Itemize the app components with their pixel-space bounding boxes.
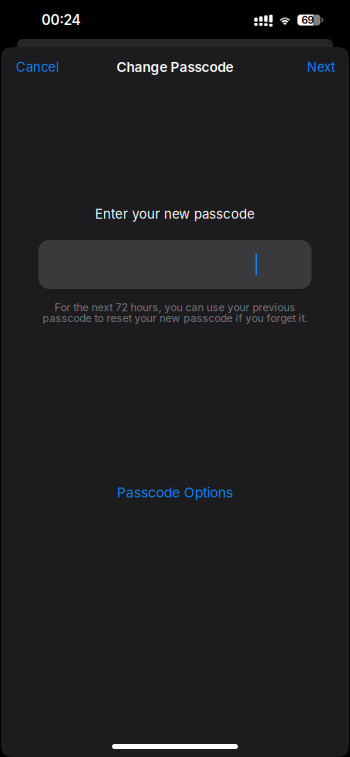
staticText: Next xyxy=(307,59,335,75)
staticText: 69 xyxy=(301,14,313,26)
button[interactable]: Next xyxy=(293,47,349,87)
staticText: 00:24 xyxy=(41,12,80,28)
staticText: For the next 72 hours, you can use your … xyxy=(54,301,295,314)
staticText: Cancel xyxy=(16,59,59,75)
button[interactable]: Cancel xyxy=(1,47,74,87)
staticText: passcode to reset your new passcode if y… xyxy=(42,312,307,324)
staticText: Enter your new passcode xyxy=(95,206,255,222)
staticText: Passcode Options xyxy=(117,484,233,501)
staticText: Change Passcode xyxy=(116,59,233,75)
button[interactable]: Passcode Options xyxy=(103,477,247,507)
